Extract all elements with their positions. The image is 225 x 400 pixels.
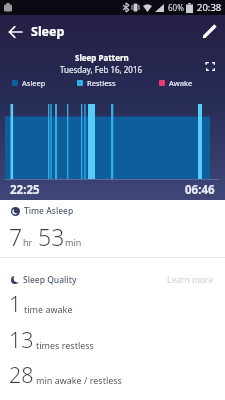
button[interactable] bbox=[202, 58, 218, 74]
staticText: min bbox=[65, 236, 82, 248]
staticText: 7 bbox=[9, 221, 23, 252]
button[interactable] bbox=[0, 15, 31, 48]
staticText: 22:25 bbox=[10, 182, 40, 198]
staticText: hr bbox=[23, 236, 33, 248]
staticText: Asleep bbox=[22, 78, 46, 88]
staticText: times restless bbox=[36, 339, 94, 351]
button[interactable] bbox=[193, 15, 225, 48]
staticText: time awake bbox=[24, 303, 73, 315]
button[interactable]: Time Asleep bbox=[11, 205, 225, 217]
staticText: 20:38 bbox=[197, 1, 222, 14]
staticText: 60% bbox=[168, 2, 184, 13]
staticText: Sleep bbox=[31, 23, 65, 40]
staticText: 06:46 bbox=[185, 182, 215, 198]
staticText: 1 bbox=[9, 289, 22, 318]
staticText: Awake bbox=[169, 78, 193, 88]
staticText: Restless bbox=[87, 78, 116, 88]
staticText: Sleep Quality bbox=[23, 274, 77, 286]
staticText: Tuesday, Feb 16, 2016 bbox=[60, 64, 143, 75]
staticText: Time Asleep bbox=[24, 205, 74, 217]
button[interactable]: Sleep Quality bbox=[11, 274, 214, 286]
staticText: 53 bbox=[38, 221, 65, 252]
staticText: 28 bbox=[9, 360, 34, 389]
button[interactable]: Learn more bbox=[167, 274, 214, 286]
staticText: Sleep Pattern bbox=[75, 52, 129, 63]
staticText: 13 bbox=[9, 325, 34, 354]
staticText: min awake / restless bbox=[36, 374, 122, 386]
